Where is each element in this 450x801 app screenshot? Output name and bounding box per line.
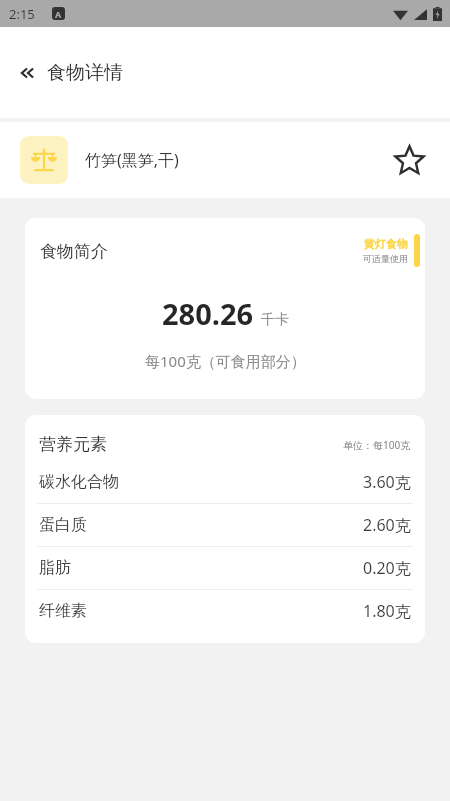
- staticText: 3.60克: [363, 471, 411, 493]
- staticText: 0.20克: [363, 557, 411, 579]
- staticText: 1.80克: [363, 600, 411, 622]
- staticText: 竹笋(黑笋,干): [85, 149, 179, 171]
- staticText: 可适量使用: [363, 253, 408, 264]
- button[interactable]: Favorite: [390, 141, 428, 179]
- staticText: 蛋白质: [39, 515, 87, 535]
- staticText: 食物简介: [40, 241, 108, 262]
- button[interactable]: 竹笋(黑笋,干): [0, 122, 450, 198]
- staticText: 营养元素: [39, 434, 107, 455]
- staticText: 每100克（可食用部分）: [145, 351, 306, 371]
- button[interactable]: 纤维素: [25, 590, 425, 632]
- staticText: 纤维素: [39, 601, 87, 621]
- staticText: 2.60克: [363, 514, 411, 536]
- staticText: 食物详情: [47, 61, 123, 85]
- button[interactable]: 蛋白质: [25, 504, 425, 546]
- staticText: 单位：每100克: [343, 438, 411, 452]
- button[interactable]: 脂肪: [25, 547, 425, 589]
- button[interactable]: 碳水化合物: [25, 461, 425, 503]
- staticText: 2:15: [9, 5, 35, 23]
- staticText: A: [55, 8, 62, 20]
- staticText: 碳水化合物: [39, 472, 119, 492]
- staticText: 千卡: [261, 311, 289, 329]
- staticText: 280.26: [162, 294, 254, 333]
- button[interactable]: Back: [10, 56, 44, 90]
- staticText: 脂肪: [39, 558, 71, 578]
- staticText: 黄灯食物: [364, 237, 408, 251]
